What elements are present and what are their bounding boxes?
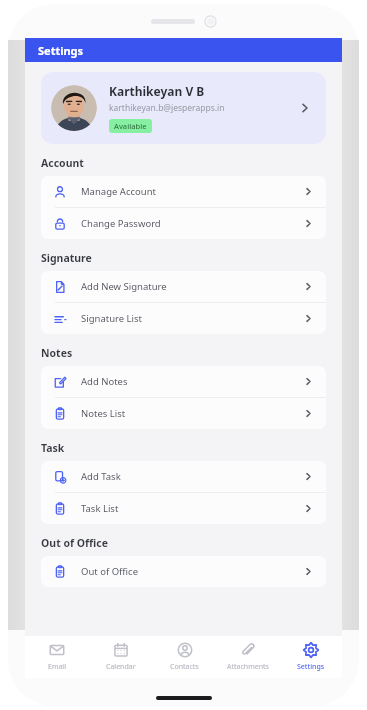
staticText: Out of Office bbox=[41, 536, 109, 550]
button[interactable]: Settings bbox=[279, 636, 342, 678]
staticText: Contacts bbox=[170, 662, 199, 672]
staticText: karthikeyan.b@jesperapps.in bbox=[109, 102, 225, 114]
button[interactable]: Attachments bbox=[216, 636, 279, 678]
button[interactable]: Karthikeyan V B bbox=[41, 72, 326, 144]
staticText: Task bbox=[41, 441, 65, 455]
button[interactable]: Calendar bbox=[89, 636, 153, 678]
staticText: Add Notes bbox=[81, 375, 303, 388]
staticText: Signature bbox=[41, 251, 92, 265]
staticText: Notes bbox=[41, 346, 73, 360]
button[interactable]: Add Notes bbox=[41, 366, 326, 397]
button[interactable]: Out of Office bbox=[41, 556, 326, 587]
button[interactable]: Notes List bbox=[41, 398, 326, 429]
staticText: Add New Signature bbox=[81, 280, 303, 293]
button[interactable]: Add Task bbox=[41, 461, 326, 492]
button[interactable]: Add New Signature bbox=[41, 271, 326, 302]
staticText: Calendar bbox=[106, 662, 136, 672]
button[interactable]: Contacts bbox=[153, 636, 216, 678]
staticText: Settings bbox=[297, 662, 325, 672]
staticText: Settings bbox=[38, 43, 84, 58]
staticText: Change Password bbox=[81, 217, 303, 230]
staticText: Out of Office bbox=[81, 565, 303, 578]
staticText: Account bbox=[41, 156, 84, 170]
button[interactable]: Signature List bbox=[41, 303, 326, 334]
staticText: Attachments bbox=[227, 662, 269, 672]
staticText: Available bbox=[114, 121, 147, 131]
staticText: Karthikeyan V B bbox=[109, 83, 205, 99]
staticText: Email bbox=[48, 662, 66, 672]
staticText: Manage Account bbox=[81, 185, 303, 198]
staticText: Add Task bbox=[81, 470, 303, 483]
button[interactable]: Manage Account bbox=[41, 176, 326, 207]
button[interactable]: Change Password bbox=[41, 208, 326, 239]
staticText: Signature List bbox=[81, 312, 303, 325]
button[interactable]: Email bbox=[25, 636, 89, 678]
staticText: Task List bbox=[81, 502, 303, 515]
staticText: Notes List bbox=[81, 407, 303, 420]
button[interactable]: Task List bbox=[41, 493, 326, 524]
